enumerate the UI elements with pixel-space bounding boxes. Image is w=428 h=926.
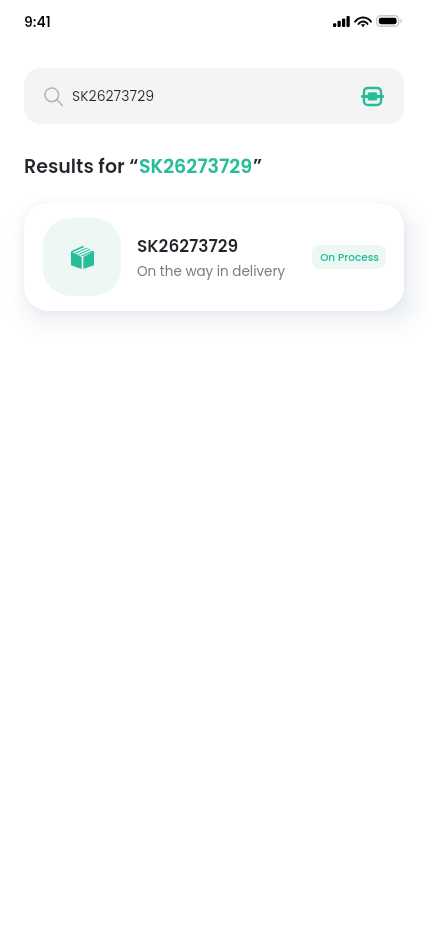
staticText: 9:41 [24, 12, 51, 32]
button[interactable]: SK26273729 [24, 68, 404, 124]
staticText: ” [253, 153, 263, 180]
button[interactable]: SK26273729 [24, 203, 404, 311]
staticText: Results for “ [24, 153, 139, 180]
button[interactable]: Scan barcode [358, 82, 386, 110]
staticText: On Process [320, 250, 379, 265]
staticText: SK26273729 [137, 234, 239, 258]
staticText: SK26273729 [139, 153, 253, 180]
staticText: SK26273729 [72, 86, 154, 106]
staticText: On the way in delivery [137, 262, 286, 281]
button[interactable]: On Process [312, 245, 386, 269]
